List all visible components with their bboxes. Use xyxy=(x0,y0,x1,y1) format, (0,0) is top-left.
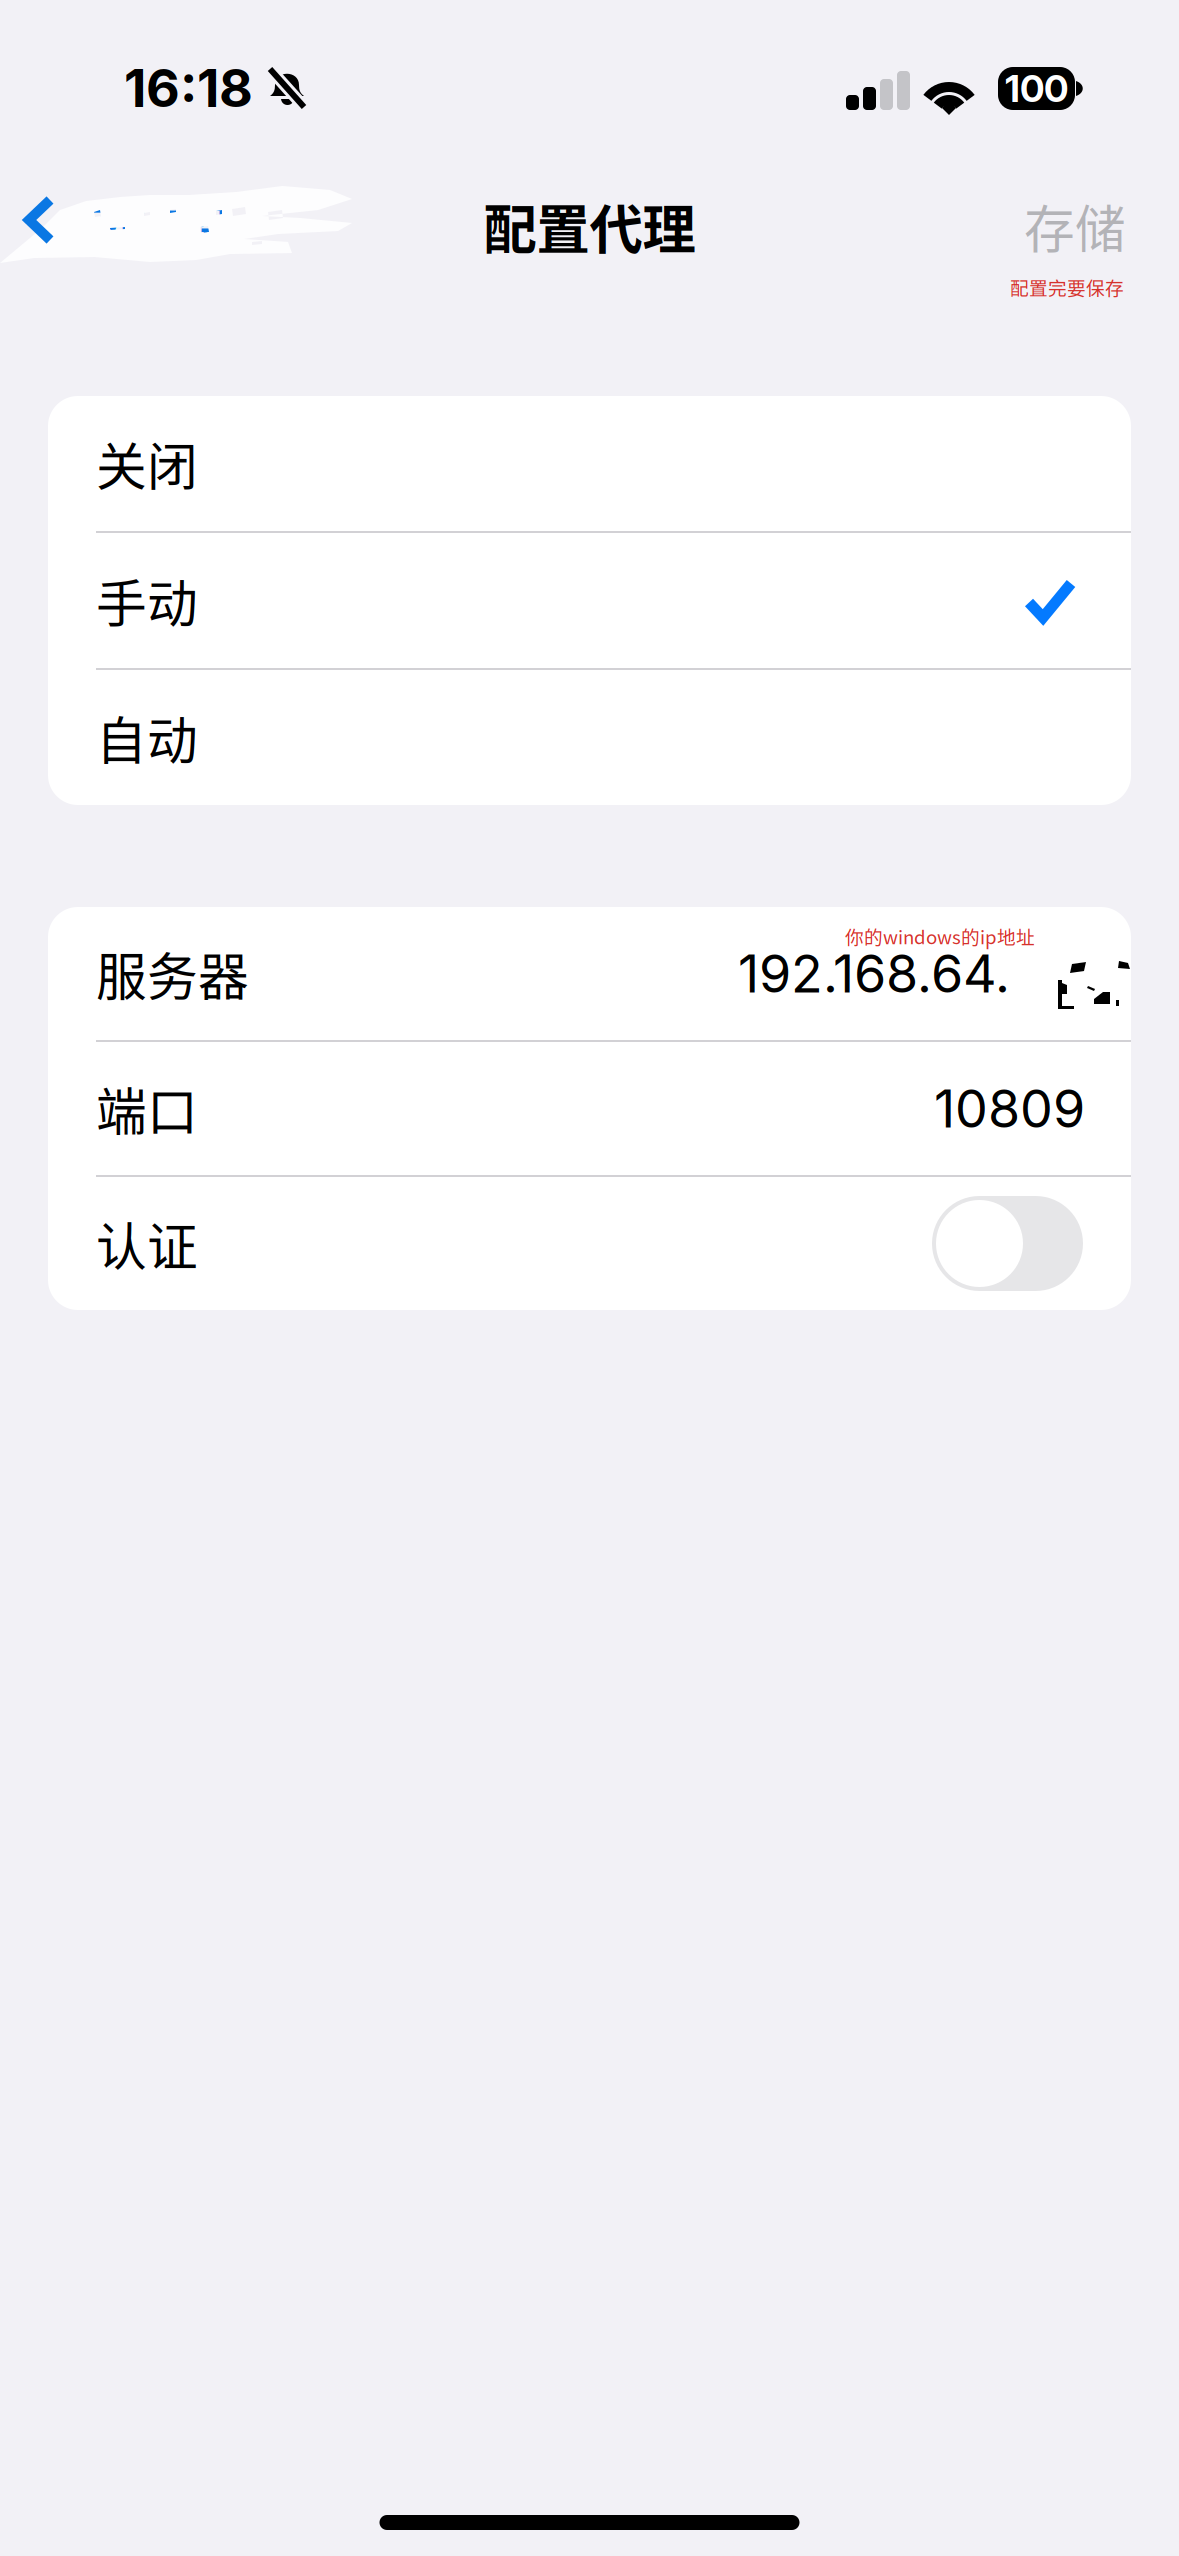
staticText: 端口 xyxy=(96,1072,198,1145)
button[interactable]: 自动 xyxy=(48,670,1131,805)
staticText: 关闭 xyxy=(96,427,198,500)
staticText: 自动 xyxy=(96,701,198,774)
staticText: 认证 xyxy=(96,1207,198,1280)
staticText: 16:18 xyxy=(124,56,253,119)
staticText: 网络设 xyxy=(80,190,233,264)
button[interactable]: 服务器 xyxy=(48,907,1131,1040)
staticText: 100 xyxy=(1005,66,1068,111)
button[interactable]: Back xyxy=(0,150,1179,342)
staticText: 配置完要保存 xyxy=(1010,273,1124,300)
button[interactable]: 关闭 xyxy=(48,396,1131,531)
staticText: 存储 xyxy=(1024,189,1126,263)
staticText: 服务器 xyxy=(96,937,249,1010)
staticText: 你的windows的ip地址 xyxy=(845,922,1035,949)
button[interactable]: 认证 xyxy=(48,1177,1131,1310)
staticText: 192.168.64. xyxy=(738,942,1010,1005)
staticText: 手动 xyxy=(96,564,198,637)
button[interactable]: 存储 xyxy=(823,180,1179,272)
button[interactable]: 手动 xyxy=(48,533,1131,668)
staticText: 10809 xyxy=(934,1077,1085,1140)
button[interactable]: 端口 xyxy=(48,1042,1131,1175)
staticText: 配置代理 xyxy=(483,187,695,265)
